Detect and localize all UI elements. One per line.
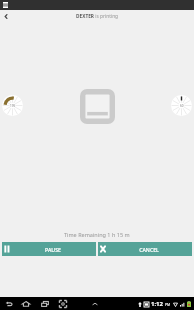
button[interactable]: PAUSE xyxy=(2,242,96,256)
staticText: CANCEL xyxy=(139,246,159,253)
staticText: PM xyxy=(165,302,171,307)
button[interactable]: Show xyxy=(91,297,99,310)
button[interactable]: CANCEL xyxy=(98,242,192,256)
staticText: PAUSE xyxy=(45,246,61,253)
staticText: 60 xyxy=(180,104,184,108)
button[interactable]: Back xyxy=(0,10,12,22)
button[interactable]: Screenshot xyxy=(58,297,67,310)
staticText: 1:12 xyxy=(151,300,163,308)
staticText: Time Remaining 1 h 15 m xyxy=(64,231,130,238)
button[interactable]: Home xyxy=(21,297,30,310)
button[interactable]: Recents xyxy=(40,297,49,310)
staticText: DEXTER is printing xyxy=(76,13,119,20)
staticText: 195 xyxy=(10,104,16,108)
button[interactable]: Back xyxy=(4,297,13,310)
